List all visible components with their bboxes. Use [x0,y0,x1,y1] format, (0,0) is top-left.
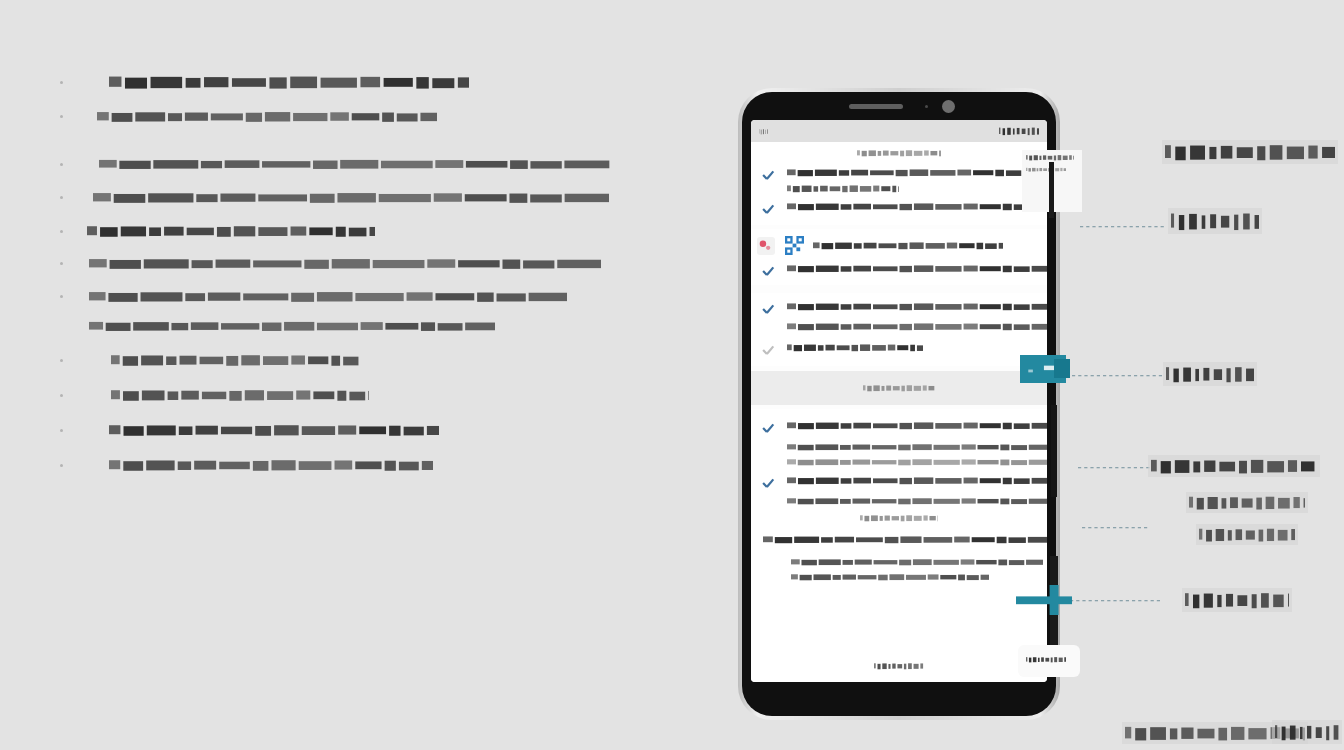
button[interactable] [0,458,1344,472]
button[interactable]: List item [761,264,1047,278]
button[interactable] [0,191,1344,204]
button[interactable]: List item [761,202,1047,216]
button[interactable] [1186,492,1308,513]
button[interactable]: Primary action [1020,355,1066,383]
button[interactable] [0,388,1344,402]
button[interactable] [0,224,1344,238]
button[interactable] [0,423,1344,437]
button[interactable] [0,290,1344,303]
button[interactable] [1168,208,1262,234]
button[interactable] [1163,362,1257,386]
button[interactable]: List item [751,229,1047,285]
other: List item [761,343,775,357]
button[interactable]: Add [1016,585,1072,615]
other: List item [761,421,775,435]
button[interactable] [1196,524,1298,545]
button[interactable] [0,320,1344,332]
button[interactable] [751,371,1047,405]
button[interactable]: List item [751,142,1047,225]
other: List item [761,168,775,182]
button[interactable] [1148,455,1320,477]
other: List item [761,264,775,278]
button[interactable] [1162,140,1338,164]
other: List item [761,302,775,316]
button[interactable]: List item [761,476,1047,490]
button[interactable] [1272,720,1342,744]
button[interactable]: List item [751,293,1047,366]
button[interactable] [1182,588,1292,612]
button[interactable]: List item [761,168,1047,193]
button[interactable] [0,110,1344,123]
button[interactable]: List item [761,343,1047,357]
button[interactable] [0,353,1344,367]
button[interactable]: List item [761,302,1047,316]
button[interactable]: List item [751,409,1047,682]
button[interactable] [0,257,1344,270]
button[interactable] [0,158,1344,170]
button[interactable] [1122,722,1308,744]
button[interactable]: List item [761,421,1047,435]
other: List item [761,202,775,216]
other: List item [761,476,775,490]
button[interactable] [0,74,1344,90]
